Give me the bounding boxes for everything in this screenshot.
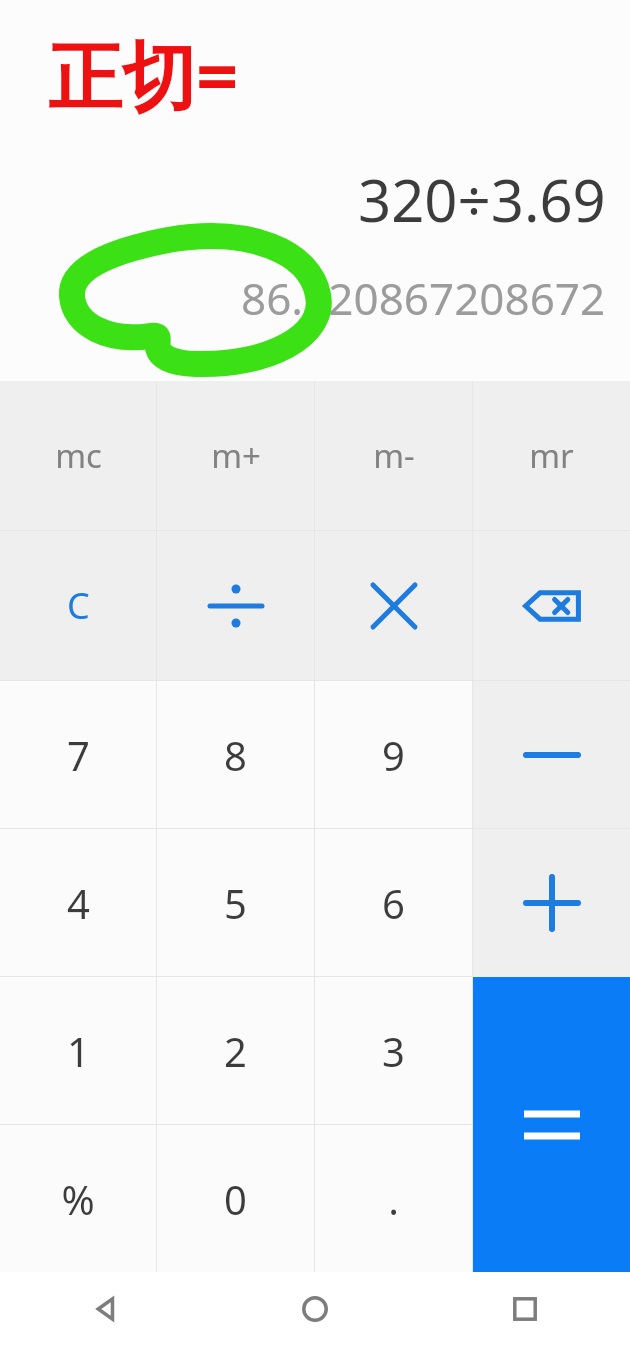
staticText: m+ bbox=[211, 433, 261, 478]
staticText: 0 bbox=[224, 1172, 247, 1226]
button[interactable]: 9 bbox=[315, 681, 472, 828]
button[interactable]: mc bbox=[0, 381, 156, 530]
button[interactable]: Back bbox=[0, 1272, 210, 1346]
button[interactable]: m- bbox=[315, 381, 472, 530]
button[interactable]: Equals bbox=[473, 977, 630, 1272]
button[interactable]: Multiply bbox=[315, 531, 472, 680]
button[interactable]: mr bbox=[473, 381, 630, 530]
staticText: m- bbox=[373, 433, 415, 478]
staticText: 6 bbox=[382, 876, 405, 930]
button[interactable]: . bbox=[315, 1125, 472, 1272]
staticText: 正切= bbox=[48, 24, 239, 125]
button[interactable]: Plus bbox=[473, 829, 630, 977]
button[interactable]: 5 bbox=[157, 829, 314, 976]
button[interactable]: Home bbox=[210, 1272, 420, 1346]
staticText: 3 bbox=[382, 1024, 405, 1078]
staticText: 8 bbox=[224, 728, 247, 782]
staticText: 320÷3.69 bbox=[358, 160, 606, 239]
staticText: 9 bbox=[382, 728, 405, 782]
button[interactable]: 3 bbox=[315, 977, 472, 1124]
staticText: 5 bbox=[224, 876, 247, 930]
staticText: C bbox=[67, 581, 90, 630]
button[interactable]: 8 bbox=[157, 681, 314, 828]
staticText: 7 bbox=[67, 728, 90, 782]
button[interactable]: Backspace bbox=[473, 531, 630, 680]
staticText: 2 bbox=[224, 1024, 247, 1078]
staticText: 4 bbox=[67, 876, 90, 930]
button[interactable]: Recents bbox=[420, 1272, 630, 1346]
button[interactable]: 1 bbox=[0, 977, 156, 1124]
button[interactable]: C bbox=[0, 531, 156, 680]
button[interactable]: Divide bbox=[157, 531, 314, 680]
staticText: 1 bbox=[67, 1024, 90, 1078]
button[interactable]: 6 bbox=[315, 829, 472, 976]
button[interactable]: m+ bbox=[157, 381, 314, 530]
button[interactable]: Minus bbox=[473, 681, 630, 828]
staticText: mr bbox=[529, 433, 574, 478]
staticText: % bbox=[61, 1172, 95, 1226]
staticText: 86.720867208672 bbox=[241, 268, 606, 328]
button[interactable]: 2 bbox=[157, 977, 314, 1124]
staticText: mc bbox=[55, 433, 102, 478]
button[interactable]: 4 bbox=[0, 829, 156, 976]
button[interactable]: 0 bbox=[157, 1125, 314, 1272]
button[interactable]: % bbox=[0, 1125, 156, 1272]
staticText: . bbox=[388, 1172, 399, 1226]
button[interactable]: 7 bbox=[0, 681, 156, 828]
